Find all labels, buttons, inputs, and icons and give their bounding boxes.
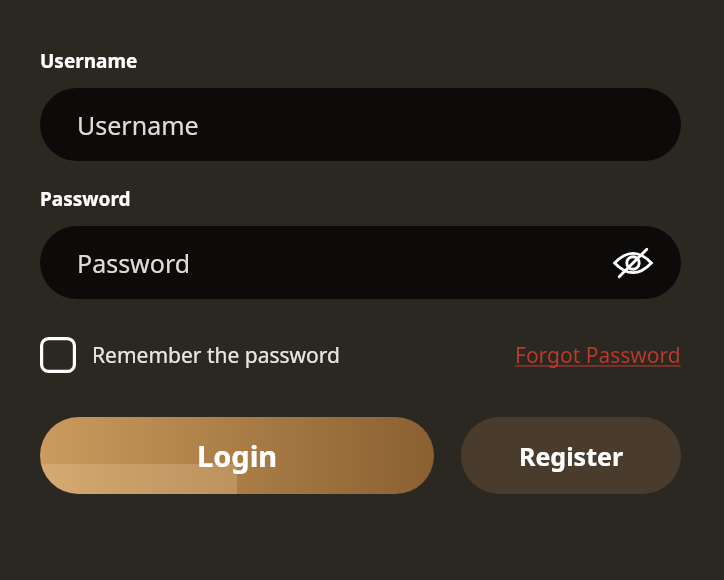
button[interactable]: Register — [461, 417, 681, 494]
button[interactable]: Show password — [607, 237, 659, 289]
button[interactable]: Login — [40, 417, 434, 494]
staticText: Forgot Password — [515, 341, 681, 370]
button[interactable]: Forgot Password — [515, 341, 681, 370]
button[interactable]: Password — [40, 226, 681, 299]
staticText: Password — [77, 246, 191, 280]
staticText: Username — [40, 48, 138, 74]
staticText: Login — [197, 436, 278, 475]
staticText: Password — [40, 186, 131, 212]
button[interactable]: Username — [40, 88, 681, 161]
staticText: Register — [519, 439, 624, 473]
button[interactable]: Remember the password — [40, 337, 340, 373]
staticText: Username — [77, 108, 199, 142]
staticText: Remember the password — [92, 341, 340, 370]
